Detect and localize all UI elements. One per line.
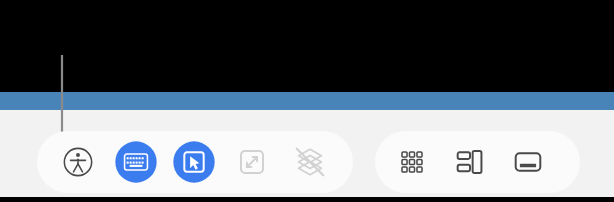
button[interactable]: Keyboard xyxy=(107,133,165,191)
button[interactable]: Pointer xyxy=(165,133,223,191)
button[interactable]: Taskbar xyxy=(499,133,557,191)
button[interactable]: Accessibility xyxy=(49,133,107,191)
button[interactable]: Layers off xyxy=(281,133,339,191)
button[interactable]: Resize xyxy=(223,133,281,191)
button[interactable]: Split screen xyxy=(441,133,499,191)
button[interactable]: All apps xyxy=(383,133,441,191)
